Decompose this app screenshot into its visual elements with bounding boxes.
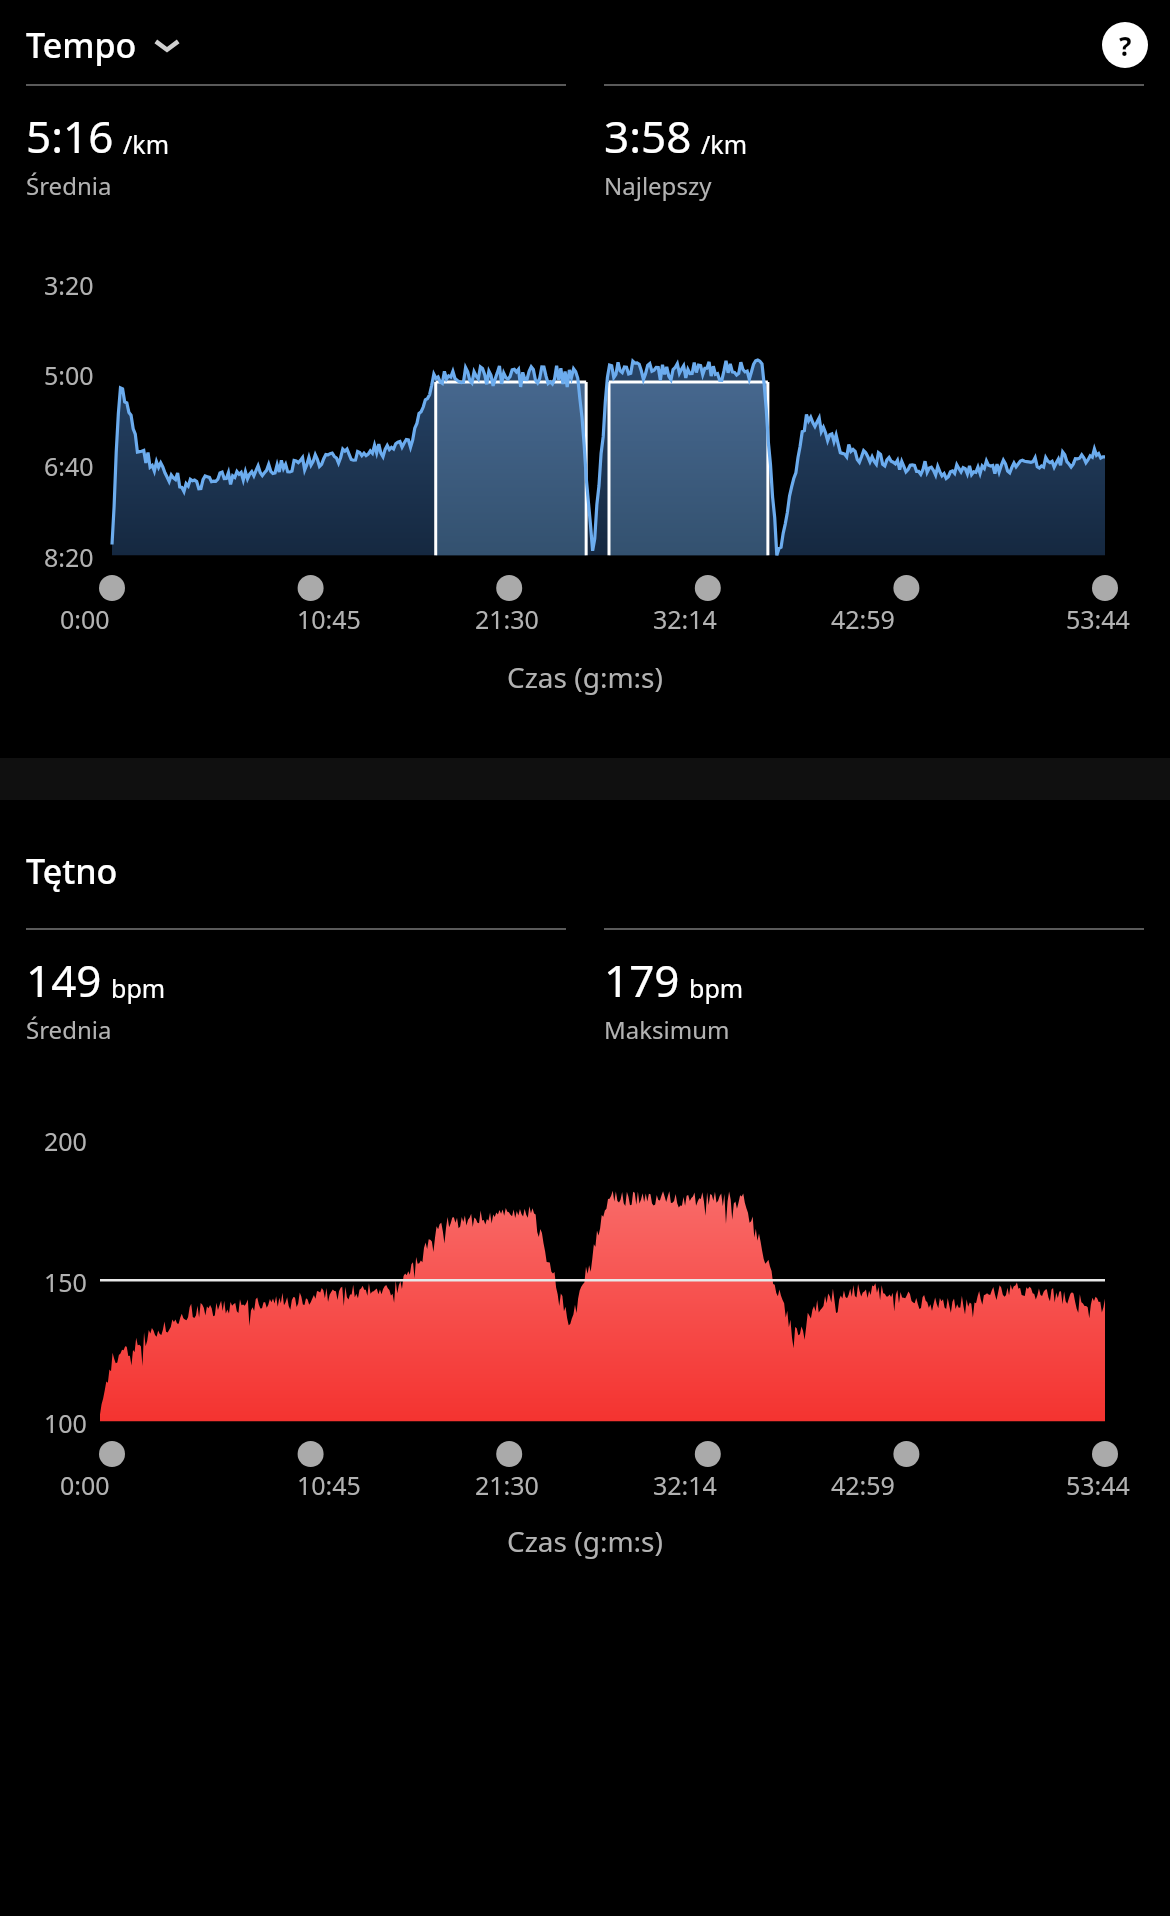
staticText: 5:16: [26, 106, 114, 166]
button[interactable]: Tempo: [26, 16, 181, 74]
staticText: 10:45: [297, 602, 361, 636]
staticText: 8:20: [44, 540, 94, 574]
staticText: 3:58: [604, 106, 692, 166]
staticText: 5:00: [44, 358, 94, 392]
button[interactable]: 179: [604, 928, 1144, 1046]
staticText: Czas (g:m:s): [507, 658, 663, 696]
staticText: 53:44: [1066, 1468, 1130, 1502]
staticText: 21:30: [475, 1468, 539, 1502]
button[interactable]: 5:16: [26, 84, 566, 202]
staticText: bpm: [689, 971, 744, 1005]
staticText: Najlepszy: [604, 169, 712, 202]
staticText: 21:30: [475, 602, 539, 636]
staticText: bpm: [111, 971, 166, 1005]
staticText: 53:44: [1066, 602, 1130, 636]
staticText: 0:00: [60, 1468, 110, 1502]
staticText: 179: [604, 950, 680, 1010]
staticText: /km: [123, 127, 170, 161]
staticText: 200: [44, 1124, 87, 1158]
staticText: Tętno: [26, 848, 118, 894]
staticText: 149: [26, 950, 102, 1010]
staticText: 32:14: [653, 1468, 717, 1502]
staticText: 150: [44, 1265, 87, 1299]
staticText: Średnia: [26, 169, 112, 202]
staticText: Czas (g:m:s): [507, 1522, 663, 1560]
button[interactable]: Pomoc: [1102, 22, 1148, 68]
button[interactable]: 149: [26, 928, 566, 1046]
staticText: 100: [44, 1406, 87, 1440]
staticText: 3:20: [44, 268, 94, 302]
button[interactable]: 3:58: [604, 84, 1144, 202]
staticText: Tempo: [26, 22, 137, 68]
staticText: 0:00: [60, 602, 110, 636]
staticText: 32:14: [653, 602, 717, 636]
staticText: ?: [1119, 28, 1132, 63]
staticText: Maksimum: [604, 1013, 730, 1046]
staticText: Średnia: [26, 1013, 112, 1046]
staticText: /km: [701, 127, 748, 161]
staticText: 42:59: [831, 602, 895, 636]
staticText: 42:59: [831, 1468, 895, 1502]
staticText: 10:45: [297, 1468, 361, 1502]
staticText: 6:40: [44, 449, 94, 483]
